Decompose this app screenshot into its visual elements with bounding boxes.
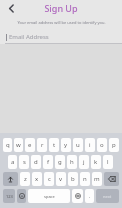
staticText: j [83,158,85,166]
staticText: f [47,158,50,166]
staticText: a [11,158,15,166]
staticText: o [100,141,104,149]
staticText: b [71,175,75,183]
staticText: e [28,141,32,149]
button[interactable]: e [25,138,35,152]
staticText: p [112,141,116,149]
button[interactable]: z [20,172,30,186]
button[interactable]: Backspace [104,172,119,186]
staticText: v [59,175,63,183]
button[interactable]: . [85,189,94,203]
button[interactable]: b [68,172,78,186]
staticText: w [16,141,21,149]
staticText: h [70,158,74,166]
button[interactable]: next [96,189,119,203]
staticText: 123 [6,194,13,199]
button[interactable]: Emoji [17,189,26,203]
button[interactable]: a [8,155,17,169]
button[interactable]: y [61,138,71,152]
staticText: z [24,175,27,183]
staticText: . [89,193,91,200]
button[interactable]: c [44,172,54,186]
button[interactable]: p [109,138,119,152]
staticText: Your email address will be used to ident… [17,20,106,25]
button[interactable]: Language [72,189,83,203]
staticText: m [94,175,100,183]
button[interactable]: Shift [3,172,18,186]
button[interactable]: t [49,138,59,152]
button[interactable]: r [37,138,47,152]
staticText: y [64,141,68,149]
staticText: l [107,158,109,166]
staticText: x [35,175,39,183]
button[interactable]: d [31,155,41,169]
button[interactable]: g [55,155,65,169]
button[interactable]: f [43,155,53,169]
button[interactable]: n [80,172,90,186]
button[interactable]: u [73,138,83,152]
button[interactable]: o [97,138,107,152]
staticText: g [58,158,62,166]
staticText: Sign Up [44,2,78,14]
button[interactable]: k [91,155,101,169]
button[interactable]: m [92,172,102,186]
button[interactable]: x [32,172,42,186]
button[interactable]: w [14,138,23,152]
button[interactable]: j [79,155,89,169]
staticText: i [89,141,91,149]
staticText: n [83,175,87,183]
button[interactable]: Back [4,1,18,15]
staticText: u [76,141,80,149]
button[interactable]: 123 [3,189,15,203]
staticText: d [34,158,38,166]
staticText: t [53,141,56,149]
staticText: space [44,194,55,199]
staticText: Email Address [9,33,49,41]
staticText: c [48,175,51,183]
button[interactable]: q [3,138,12,152]
button[interactable]: v [56,172,66,186]
staticText: s [23,158,26,166]
button[interactable]: space [28,189,70,203]
button[interactable]: h [67,155,77,169]
staticText: next [103,194,112,199]
button[interactable]: i [85,138,95,152]
button[interactable]: l [103,155,113,169]
button[interactable]: Email Address [0,29,122,44]
staticText: q [6,141,10,149]
staticText: k [94,158,98,166]
staticText: r [41,141,44,149]
button[interactable]: s [19,155,29,169]
